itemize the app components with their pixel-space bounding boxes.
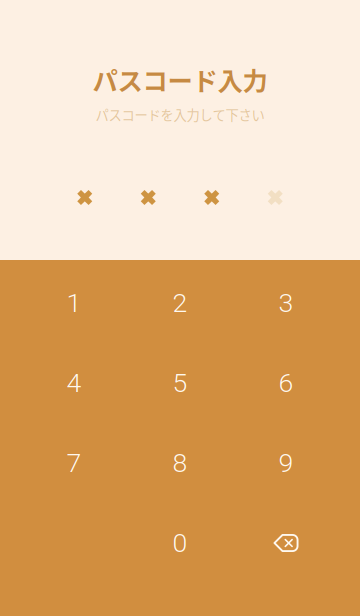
staticText: 7 xyxy=(66,447,81,479)
staticText: パスコードを入力して下さい xyxy=(95,105,264,124)
staticText: パスコード入力 xyxy=(92,61,267,98)
staticText: 6 xyxy=(278,367,293,399)
staticText: 4 xyxy=(66,367,81,399)
button[interactable]: 2 xyxy=(127,263,233,343)
button[interactable]: 3 xyxy=(233,263,339,343)
staticText: 0 xyxy=(172,527,187,559)
staticText: 8 xyxy=(172,447,187,479)
button[interactable]: 9 xyxy=(233,423,339,503)
staticText: 5 xyxy=(172,367,187,399)
staticText: 1 xyxy=(66,287,81,319)
button[interactable]: 0 xyxy=(127,503,233,583)
button[interactable]: 8 xyxy=(127,423,233,503)
staticText: 9 xyxy=(278,447,293,479)
staticText: 3 xyxy=(278,287,293,319)
button[interactable]: 1 xyxy=(21,263,127,343)
button[interactable]: 7 xyxy=(21,423,127,503)
button[interactable]: 4 xyxy=(21,343,127,423)
button[interactable]: 5 xyxy=(127,343,233,423)
button[interactable]: 6 xyxy=(233,343,339,423)
button[interactable]: Delete xyxy=(233,503,339,583)
staticText: 2 xyxy=(172,287,187,319)
